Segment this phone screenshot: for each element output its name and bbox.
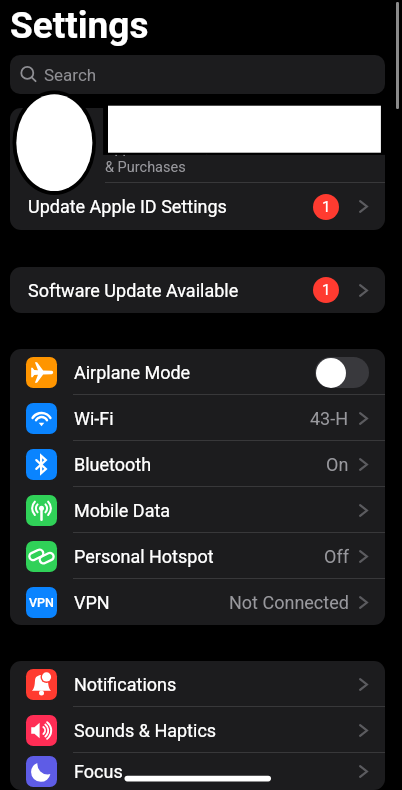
staticText: VPN — [29, 595, 54, 610]
staticText: Settings — [10, 4, 149, 47]
button[interactable]: Search — [10, 55, 385, 94]
staticText: VPN — [74, 592, 110, 613]
button[interactable]: Software Update Available — [10, 267, 385, 313]
staticText: Update Apple ID Settings — [28, 196, 227, 217]
button[interactable]: Bluetooth — [10, 441, 385, 487]
staticText: Not Connected — [229, 592, 349, 613]
staticText: Focus — [74, 761, 123, 782]
staticText: Off — [324, 546, 349, 567]
staticText: 1 — [322, 281, 331, 299]
staticText: Notifications — [74, 674, 177, 695]
staticText: 1 — [322, 198, 331, 216]
button[interactable]: Notifications — [10, 661, 385, 707]
staticText: Mobile Data — [74, 500, 171, 521]
staticText: Bluetooth — [74, 454, 152, 475]
button[interactable]: Focus — [10, 753, 385, 790]
button[interactable]: Personal Hotspot — [10, 533, 385, 579]
staticText: Wi-Fi — [74, 408, 114, 429]
staticText: Search — [44, 65, 97, 85]
button[interactable]: Wi-Fi — [10, 395, 385, 441]
staticText: Sounds & Haptics — [74, 720, 217, 741]
button[interactable]: Mobile Data — [10, 487, 385, 533]
button[interactable]: Update Apple ID Settings — [10, 183, 385, 230]
button[interactable]: Airplane Mode — [10, 349, 385, 395]
button[interactable]: VPN — [10, 579, 385, 625]
staticText: 43-H — [310, 408, 349, 429]
staticText: On — [326, 454, 349, 475]
staticText: Airplane Mode — [74, 362, 191, 383]
button[interactable]: Sounds & Haptics — [10, 707, 385, 753]
button[interactable]: Apple ID, iCloud, Media — [10, 108, 385, 183]
staticText: Software Update Available — [28, 280, 239, 301]
staticText: Personal Hotspot — [74, 546, 214, 567]
button[interactable]: Airplane Mode — [315, 357, 369, 388]
staticText: & Purchases — [105, 159, 186, 176]
staticText: Apple ID, iCloud, Media — [105, 140, 253, 157]
